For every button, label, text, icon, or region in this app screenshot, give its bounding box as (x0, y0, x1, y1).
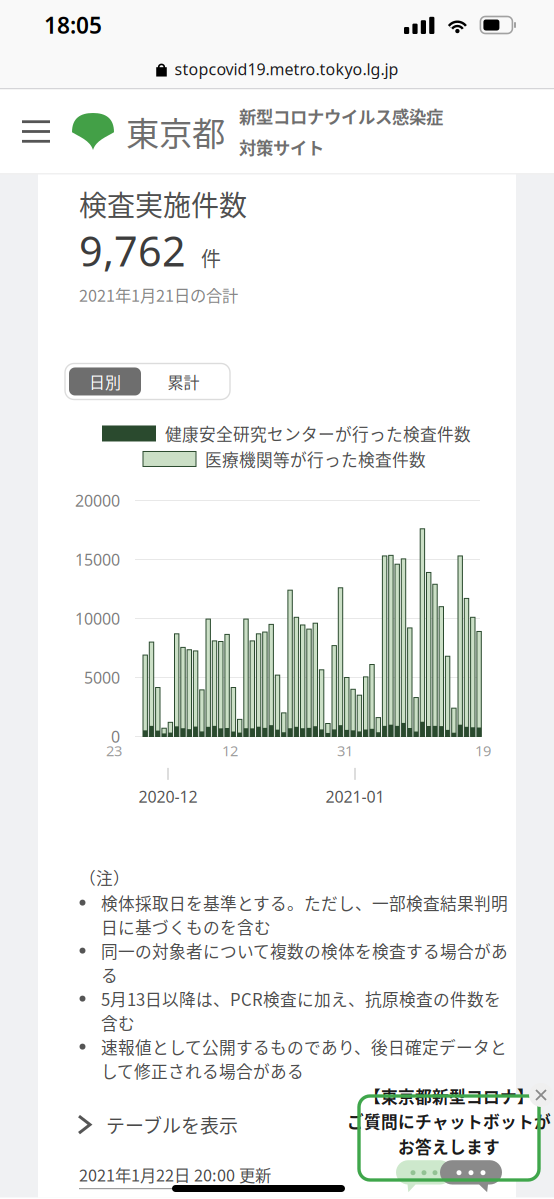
staticText: して修正される場合がある (101, 1059, 304, 1083)
staticText: 日別 (89, 370, 121, 393)
staticText: 検査実施件数 (79, 183, 247, 224)
staticText: 20000 (75, 490, 120, 511)
staticText: 日に基づくものを含む (101, 915, 271, 939)
staticText: 東京都 (126, 107, 225, 156)
button[interactable]: Menu (12, 107, 60, 155)
staticText: 検体採取日を基準とする。ただし、一部検査結果判明 (101, 891, 508, 915)
staticText: 対策サイト (239, 134, 324, 160)
staticText: 健康安全研究センターが行った検査件数 (165, 421, 471, 445)
button[interactable]: テーブルを表示 (79, 1105, 475, 1145)
staticText: 10000 (75, 608, 120, 629)
staticText: る (101, 963, 118, 987)
button[interactable]: 【東京都新型コロナ】 (359, 1096, 539, 1180)
staticText: 【東京都新型コロナ】 (364, 1084, 534, 1108)
staticText: 15000 (75, 549, 120, 570)
staticText: 9,762 (79, 223, 186, 278)
staticText: 新型コロナウイルス感染症 (239, 103, 443, 128)
staticText: 5月13日以降は、PCR検査に加え、抗原検査の件数を (101, 987, 501, 1011)
button[interactable]: Close (529, 1083, 553, 1107)
staticText: 2021年1月22日 20:00 更新 (79, 1163, 271, 1186)
staticText: stopcovid19.metro.tokyo.lg.jp (174, 58, 398, 80)
staticText: 12 (222, 741, 238, 760)
staticText: 含む (101, 1011, 135, 1035)
staticText: 医療機関等が行った検査件数 (205, 447, 426, 471)
staticText: 31 (337, 741, 353, 760)
staticText: 2021年1月21日の合計 (79, 283, 238, 306)
staticText: 2020-12 (138, 786, 197, 807)
button[interactable]: 日別 (69, 367, 141, 395)
staticText: 同一の対象者について複数の検体を検査する場合があ (101, 939, 508, 963)
staticText: お答えします (398, 1134, 500, 1158)
staticText: テーブルを表示 (106, 1111, 238, 1138)
button[interactable]: 累計 (141, 367, 226, 395)
staticText: ご質問にチャットボットが (347, 1109, 551, 1133)
staticText: 23 (106, 741, 122, 760)
staticText: 5000 (84, 667, 120, 688)
button[interactable]: stopcovid19.metro.tokyo.lg.jp (0, 50, 554, 88)
staticText: 累計 (167, 370, 199, 393)
staticText: 2021-01 (325, 786, 384, 807)
staticText: 件 (201, 243, 221, 272)
staticText: 19 (475, 741, 491, 760)
staticText: 0 (111, 726, 120, 747)
staticText: 速報値として公開するものであり、後日確定データと (101, 1035, 507, 1059)
staticText: （注） (79, 865, 130, 890)
staticText: 18:05 (44, 10, 102, 40)
